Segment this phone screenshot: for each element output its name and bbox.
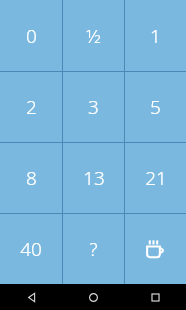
button[interactable]: Coffee break xyxy=(125,214,186,284)
button[interactable]: 8 xyxy=(0,143,62,213)
button[interactable]: 0 xyxy=(0,0,62,71)
staticText: 0 xyxy=(26,23,37,49)
button[interactable]: Home xyxy=(62,284,124,310)
staticText: 13 xyxy=(83,165,105,191)
button[interactable]: 21 xyxy=(125,143,186,213)
staticText: ½ xyxy=(86,23,101,49)
staticText: 5 xyxy=(150,94,161,120)
button[interactable]: ? xyxy=(63,214,124,284)
button[interactable]: 3 xyxy=(63,72,124,142)
button[interactable]: 13 xyxy=(63,143,124,213)
staticText: 8 xyxy=(26,165,37,191)
staticText: 21 xyxy=(145,165,167,191)
staticText: 40 xyxy=(20,236,42,262)
staticText: ? xyxy=(89,236,98,262)
staticText: 3 xyxy=(88,94,99,120)
button[interactable]: 5 xyxy=(125,72,186,142)
button[interactable]: Recent apps xyxy=(124,284,186,310)
button[interactable]: 2 xyxy=(0,72,62,142)
staticText: 2 xyxy=(26,94,37,120)
button[interactable]: 40 xyxy=(0,214,62,284)
button[interactable]: ½ xyxy=(63,0,124,71)
button[interactable]: 1 xyxy=(125,0,186,71)
staticText: 1 xyxy=(150,23,161,49)
button[interactable]: Back xyxy=(0,284,62,310)
